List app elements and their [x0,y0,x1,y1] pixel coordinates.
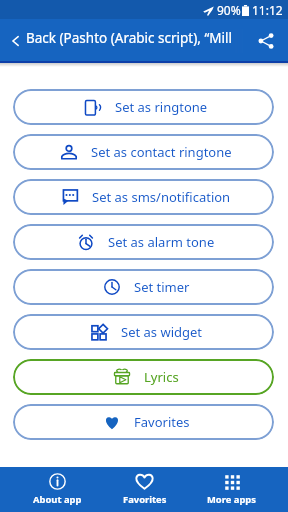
button[interactable]: Set as alarm tone [13,224,274,260]
button[interactable]: Set timer [13,269,274,305]
button[interactable]: Set as widget [13,314,274,350]
button[interactable]: Set as contact ringtone [13,134,274,170]
staticText: Lyrics [144,368,179,386]
staticText: More apps [207,493,256,506]
button[interactable]: Set as ringtone [13,89,274,125]
staticText: Set as ringtone [115,98,208,116]
staticText: Favorites [134,413,190,431]
button[interactable]: Share [243,19,288,63]
staticText: Set as contact ringtone [91,143,232,161]
button[interactable]: Set as sms/notification [13,179,274,215]
staticText: Set timer [134,278,190,296]
staticText: 90% [217,2,241,18]
button[interactable]: About app [13,467,101,512]
staticText: Set as alarm tone [108,233,215,251]
staticText: Set as widget [121,323,203,341]
button[interactable]: Lyrics [13,359,274,395]
staticText: Set as sms/notification [92,188,231,206]
button[interactable]: Favorites [13,404,274,440]
staticText: Back (Pashto (Arabic script), “Mill [26,29,232,47]
button[interactable]: More apps [188,467,275,512]
staticText: 11:12 [252,2,283,18]
button[interactable]: Favorites [101,467,188,512]
staticText: Favorites [123,493,167,506]
button[interactable]: Back (Pashto (Arabic script), “Mill [0,19,243,63]
staticText: About app [33,493,82,506]
